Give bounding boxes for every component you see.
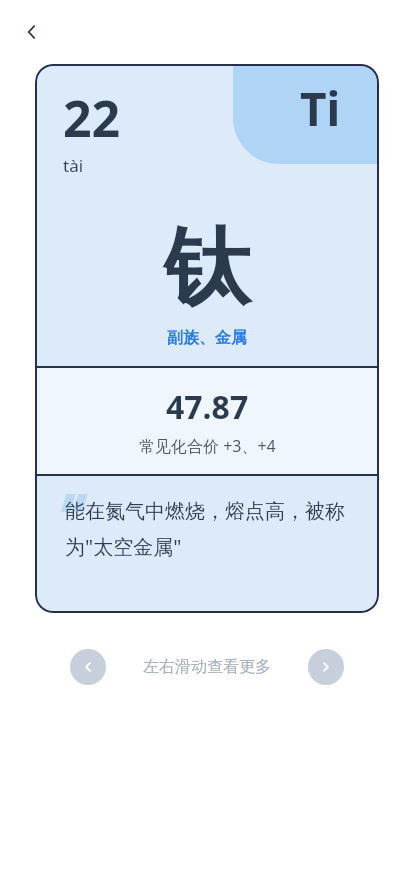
staticText: tài xyxy=(63,154,84,177)
staticText: 钛 xyxy=(164,214,250,322)
button[interactable]: Previous element xyxy=(70,649,106,685)
staticText: Ti xyxy=(300,77,341,140)
staticText: 常见化合价 +3、+4 xyxy=(139,435,276,457)
staticText: 22 xyxy=(63,84,121,152)
staticText: 47.87 xyxy=(166,385,249,429)
staticText: 能在氮气中燃烧，熔点高，被称为"太空金属" xyxy=(65,499,349,560)
button[interactable]: Back xyxy=(14,14,50,50)
button[interactable]: Ti xyxy=(35,64,379,613)
staticText: 左右滑动查看更多 xyxy=(143,657,271,677)
button[interactable]: Next element xyxy=(308,649,344,685)
staticText: 副族、金属 xyxy=(167,328,247,348)
